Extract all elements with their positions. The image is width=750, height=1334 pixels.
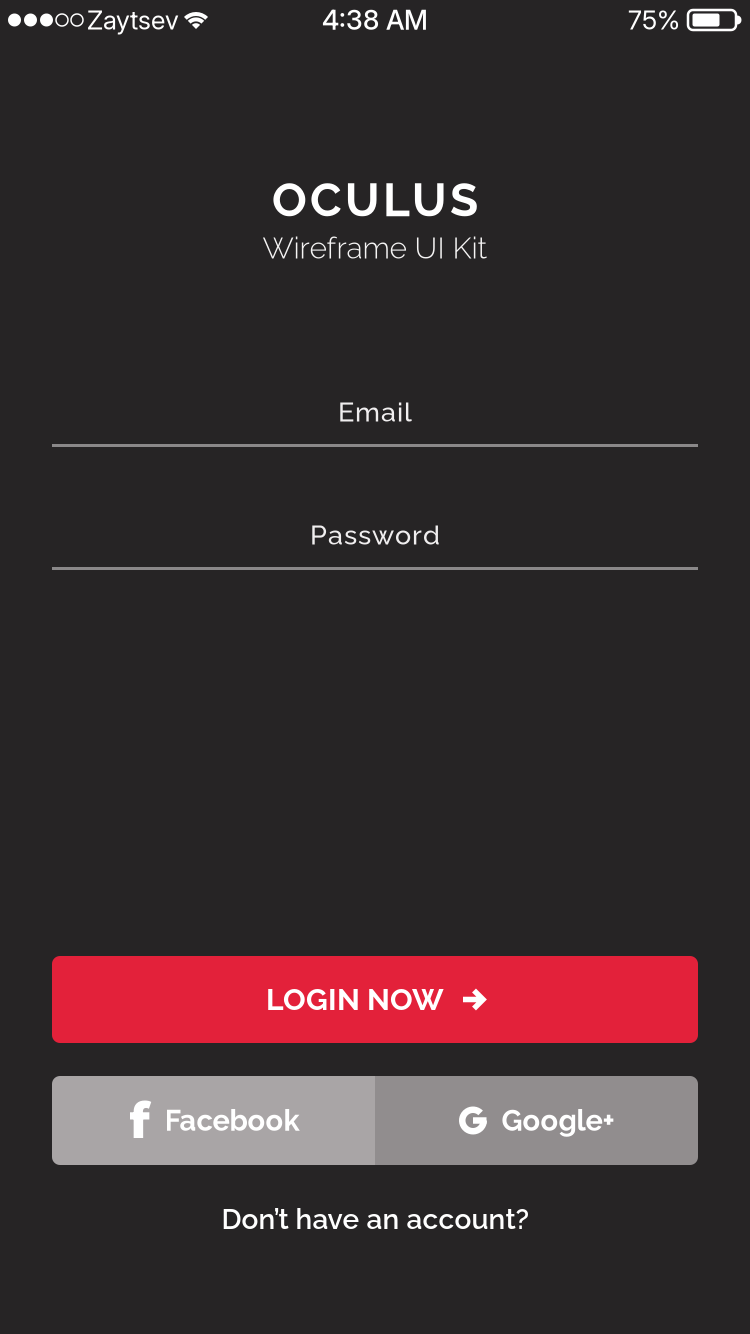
staticText: 4:38 AM bbox=[322, 4, 428, 36]
button[interactable]: Password bbox=[52, 517, 698, 570]
button[interactable]: LOGIN NOW bbox=[52, 956, 698, 1043]
staticText: Facebook bbox=[164, 1103, 299, 1137]
button[interactable]: Email bbox=[52, 394, 698, 447]
staticText: f bbox=[129, 1090, 149, 1151]
staticText: Zaytsev bbox=[87, 5, 179, 35]
button[interactable]: Google+ bbox=[375, 1076, 698, 1165]
staticText: Don’t have an account? bbox=[221, 1203, 528, 1235]
staticText: Google+ bbox=[501, 1103, 614, 1137]
staticText: Wireframe UI Kit bbox=[262, 230, 487, 266]
staticText: Password bbox=[310, 519, 440, 551]
staticText: 75% bbox=[628, 5, 680, 35]
staticText: LOGIN NOW bbox=[266, 982, 444, 1017]
button[interactable]: f bbox=[52, 1076, 375, 1165]
staticText: Email bbox=[338, 396, 412, 428]
staticText: OCULUS bbox=[272, 173, 478, 227]
button[interactable]: Don’t have an account? bbox=[221, 1201, 528, 1237]
